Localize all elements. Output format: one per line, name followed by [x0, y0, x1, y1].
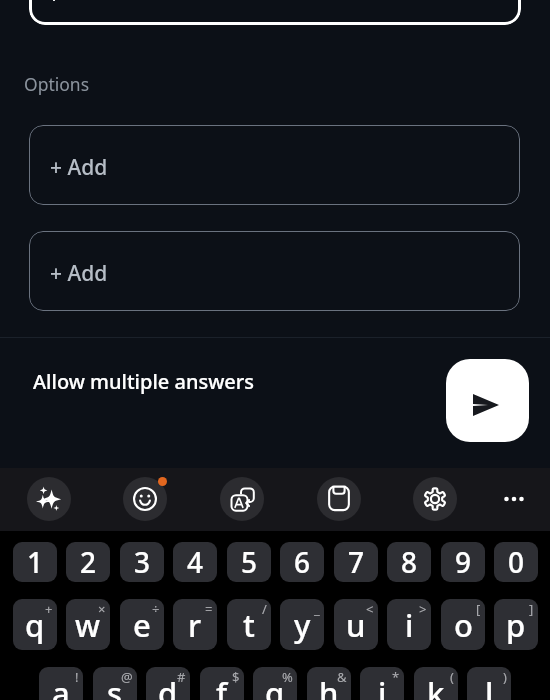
- button[interactable]: e: [120, 599, 164, 650]
- button[interactable]: j: [360, 667, 404, 700]
- staticText: l: [485, 672, 494, 700]
- button[interactable]: 7: [334, 542, 378, 582]
- button[interactable]: g: [253, 667, 297, 700]
- button[interactable]: 4: [173, 542, 217, 582]
- button[interactable]: t: [227, 599, 271, 650]
- button[interactable]: More options: [494, 479, 534, 519]
- button[interactable]: u: [334, 599, 378, 650]
- button[interactable]: + Add: [29, 125, 520, 205]
- button[interactable]: l: [467, 667, 511, 700]
- button[interactable]: r: [173, 599, 217, 650]
- staticText: q: [25, 604, 45, 646]
- staticText: /: [262, 600, 267, 618]
- staticText: $: [232, 668, 240, 686]
- staticText: &: [337, 668, 347, 686]
- button[interactable]: 6: [280, 542, 324, 582]
- staticText: @: [121, 668, 133, 686]
- staticText: 1: [27, 543, 44, 581]
- staticText: *: [392, 668, 400, 686]
- staticText: 9: [455, 543, 472, 581]
- button[interactable]: s: [93, 667, 137, 700]
- staticText: [: [476, 600, 481, 618]
- staticText: g: [265, 672, 285, 700]
- staticText: Allow multiple answers: [33, 368, 254, 395]
- button[interactable]: y: [280, 599, 324, 650]
- staticText: w: [75, 604, 101, 646]
- staticText: +: [45, 600, 53, 618]
- button[interactable]: 0: [494, 542, 538, 582]
- staticText: a: [52, 672, 70, 700]
- staticText: 2: [80, 543, 97, 581]
- button[interactable]: h: [307, 667, 351, 700]
- staticText: =: [205, 600, 213, 618]
- button[interactable]: 2: [66, 542, 110, 582]
- staticText: #: [177, 668, 186, 686]
- staticText: _: [314, 600, 320, 618]
- staticText: i: [405, 604, 414, 646]
- button[interactable]: d: [146, 667, 190, 700]
- staticText: ]: [529, 600, 534, 618]
- staticText: <: [366, 600, 374, 618]
- button[interactable]: i: [387, 599, 431, 650]
- staticText: r: [188, 604, 202, 646]
- staticText: ÷: [152, 600, 160, 618]
- button[interactable]: k: [414, 667, 458, 700]
- staticText: Options: [24, 72, 90, 96]
- button[interactable]: p: [494, 599, 538, 650]
- staticText: >: [419, 600, 427, 618]
- staticText: ×: [98, 600, 106, 618]
- button[interactable]: 1: [13, 542, 57, 582]
- staticText: %: [282, 668, 293, 686]
- staticText: 6: [294, 543, 311, 581]
- staticText: k: [427, 672, 445, 700]
- staticText: 3: [134, 543, 151, 581]
- staticText: t: [243, 604, 255, 646]
- staticText: o: [454, 604, 473, 646]
- staticText: p: [506, 604, 526, 646]
- button[interactable]: w: [66, 599, 110, 650]
- staticText: ): [503, 668, 507, 686]
- staticText: s: [107, 672, 123, 700]
- staticText: 5: [241, 543, 258, 581]
- staticText: 4: [187, 543, 204, 581]
- button[interactable]: + Add: [29, 231, 520, 311]
- button[interactable]: q: [13, 599, 57, 650]
- staticText: f: [216, 672, 228, 700]
- staticText: + Add: [50, 259, 108, 288]
- button[interactable]: 5: [227, 542, 271, 582]
- staticText: !: [75, 668, 79, 686]
- staticText: u: [346, 604, 366, 646]
- button[interactable]: 9: [441, 542, 485, 582]
- staticText: h: [319, 672, 339, 700]
- button[interactable]: Settings: [413, 477, 457, 521]
- staticText: j: [378, 672, 387, 700]
- staticText: y: [294, 604, 311, 646]
- staticText: e: [133, 604, 151, 646]
- staticText: 8: [401, 543, 418, 581]
- button[interactable]: Stickers: [220, 477, 264, 521]
- button[interactable]: 3: [120, 542, 164, 582]
- button[interactable]: [29, 0, 521, 25]
- button[interactable]: a: [39, 667, 83, 700]
- staticText: 7: [348, 543, 365, 581]
- staticText: d: [158, 672, 178, 700]
- button[interactable]: Send: [446, 359, 529, 442]
- button[interactable]: 8: [387, 542, 431, 582]
- button[interactable]: Emoji: [123, 477, 167, 521]
- button[interactable]: Saved replies: [317, 477, 361, 521]
- button[interactable]: o: [441, 599, 485, 650]
- button[interactable]: AI suggestions: [27, 477, 71, 521]
- staticText: (: [450, 668, 454, 686]
- staticText: + Add: [50, 153, 108, 182]
- staticText: 0: [508, 543, 525, 581]
- button[interactable]: f: [200, 667, 244, 700]
